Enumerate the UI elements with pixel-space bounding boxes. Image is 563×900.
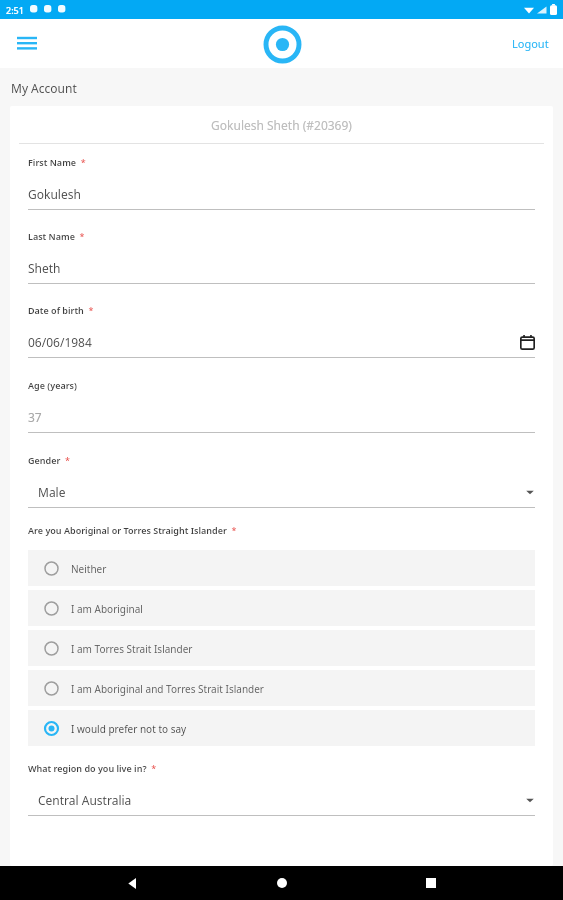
staticText: I am Aboriginal xyxy=(71,602,143,616)
staticText: I am Aboriginal and Torres Strait Island… xyxy=(71,682,264,696)
button[interactable]: Recent apps xyxy=(414,866,448,900)
staticText: I am Torres Strait Islander xyxy=(71,642,193,656)
staticText: 37 xyxy=(28,409,535,425)
staticText: Neither xyxy=(71,562,107,576)
staticText: Gender * xyxy=(28,454,70,466)
staticText: My Account xyxy=(11,80,77,96)
staticText: Date of birth * xyxy=(28,304,94,316)
staticText: Sheth xyxy=(28,260,535,276)
other: Open dropdown xyxy=(525,487,535,497)
other: Open dropdown xyxy=(525,795,535,805)
button[interactable]: Age (years) xyxy=(28,379,535,433)
staticText: Gokulesh Sheth (#20369) xyxy=(211,117,352,133)
button[interactable]: First Name * xyxy=(28,156,535,210)
button[interactable]: I am Aboriginal and Torres Strait Island… xyxy=(28,670,535,706)
staticText: Central Australia xyxy=(38,792,525,808)
button[interactable]: Date of birth * xyxy=(28,304,535,358)
button[interactable]: App logo xyxy=(263,25,301,63)
staticText: Gokulesh xyxy=(28,186,535,202)
staticText: First Name * xyxy=(28,156,86,168)
button[interactable]: I am Torres Strait Islander xyxy=(28,630,535,666)
staticText: 06/06/1984 xyxy=(28,334,520,350)
staticText: Last Name * xyxy=(28,230,85,242)
staticText: 2:51 xyxy=(6,4,24,16)
button[interactable]: Last Name * xyxy=(28,230,535,284)
button[interactable]: I am Aboriginal xyxy=(28,590,535,626)
button[interactable]: Logout xyxy=(506,30,555,57)
staticText: Male xyxy=(38,484,525,500)
button[interactable]: Neither xyxy=(28,550,535,586)
staticText: What region do you live in? * xyxy=(28,762,157,774)
button[interactable]: Open menu xyxy=(12,29,42,59)
staticText: Age (years) xyxy=(28,379,77,391)
staticText: Are you Aboriginal or Torres Straight Is… xyxy=(28,524,237,536)
button[interactable]: What region do you live in? * xyxy=(28,762,535,816)
staticText: Logout xyxy=(512,36,549,51)
button[interactable]: I would prefer not to say xyxy=(28,710,535,746)
staticText: I would prefer not to say xyxy=(71,722,187,736)
button[interactable]: Back xyxy=(115,866,149,900)
other: Pick date xyxy=(520,335,535,350)
button[interactable]: Home xyxy=(265,866,299,900)
button[interactable]: Gender * xyxy=(28,454,535,508)
